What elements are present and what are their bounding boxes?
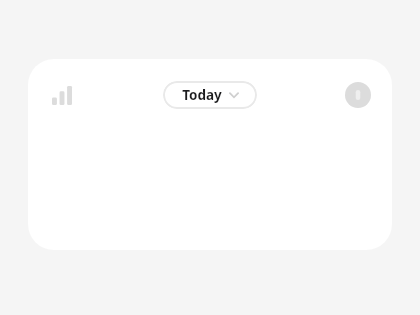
staticText: Today xyxy=(182,86,222,104)
button[interactable]: Profile xyxy=(343,80,373,110)
button[interactable]: Statistics xyxy=(47,80,77,110)
button[interactable]: Today xyxy=(163,81,257,109)
